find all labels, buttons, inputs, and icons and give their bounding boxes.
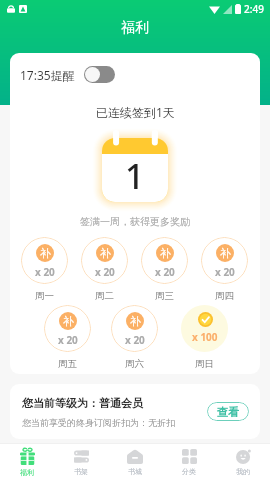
button[interactable]: 补 (200, 237, 248, 302)
staticText: 已连续签到1天 (96, 104, 175, 120)
staticText: 补 (160, 246, 171, 260)
button[interactable]: 补 (110, 305, 158, 370)
staticText: 分类 (182, 467, 196, 476)
staticText: 我的 (236, 467, 250, 476)
staticText: 补 (220, 246, 231, 260)
button[interactable]: 福利 (0, 444, 54, 480)
staticText: 17:35提醒 (20, 67, 75, 83)
staticText: 您当前等级为：普通会员 (22, 396, 143, 410)
staticText: 补 (130, 314, 141, 328)
staticText: x 20 (155, 265, 175, 279)
staticText: 书架 (74, 467, 88, 476)
staticText: 福利 (121, 19, 149, 37)
staticText: 补 (63, 314, 74, 328)
staticText: 福利 (20, 468, 34, 477)
button[interactable]: 补 (20, 237, 68, 302)
button[interactable]: 查看 (207, 402, 249, 421)
button[interactable]: 我的 (216, 444, 270, 480)
staticText: x 20 (95, 265, 115, 279)
staticText: x 20 (58, 333, 78, 347)
staticText: 周五 (58, 358, 77, 370)
staticText: x 20 (215, 265, 235, 279)
staticText: 补 (40, 246, 51, 260)
staticText: x 20 (35, 265, 55, 279)
staticText: 签满一周，获得更多奖励 (80, 215, 190, 228)
staticText: 查看 (217, 405, 239, 419)
staticText: 周四 (215, 290, 234, 302)
staticText: 周二 (95, 290, 114, 302)
button[interactable]: 补 (140, 237, 188, 302)
staticText: 1 (125, 153, 145, 199)
button[interactable]: 书城 (108, 444, 162, 480)
button[interactable]: x 100 (180, 305, 228, 370)
staticText: x 20 (125, 333, 145, 347)
staticText: 2:49 (244, 2, 264, 16)
staticText: 周六 (125, 358, 144, 370)
staticText: 周一 (35, 290, 54, 302)
button[interactable]: 分类 (162, 444, 216, 480)
staticText: 周三 (155, 290, 174, 302)
button[interactable]: 补 (43, 305, 91, 370)
button[interactable]: 书架 (54, 444, 108, 480)
staticText: 补 (100, 246, 111, 260)
staticText: x 100 (192, 330, 218, 344)
button[interactable]: 补 (80, 237, 128, 302)
staticText: 周日 (195, 358, 214, 370)
button[interactable]: Toggle 17:35 reminder (84, 66, 115, 83)
staticText: 书城 (128, 467, 142, 476)
staticText: 您当前享受的终身订阅折扣为：无折扣 (22, 417, 175, 428)
